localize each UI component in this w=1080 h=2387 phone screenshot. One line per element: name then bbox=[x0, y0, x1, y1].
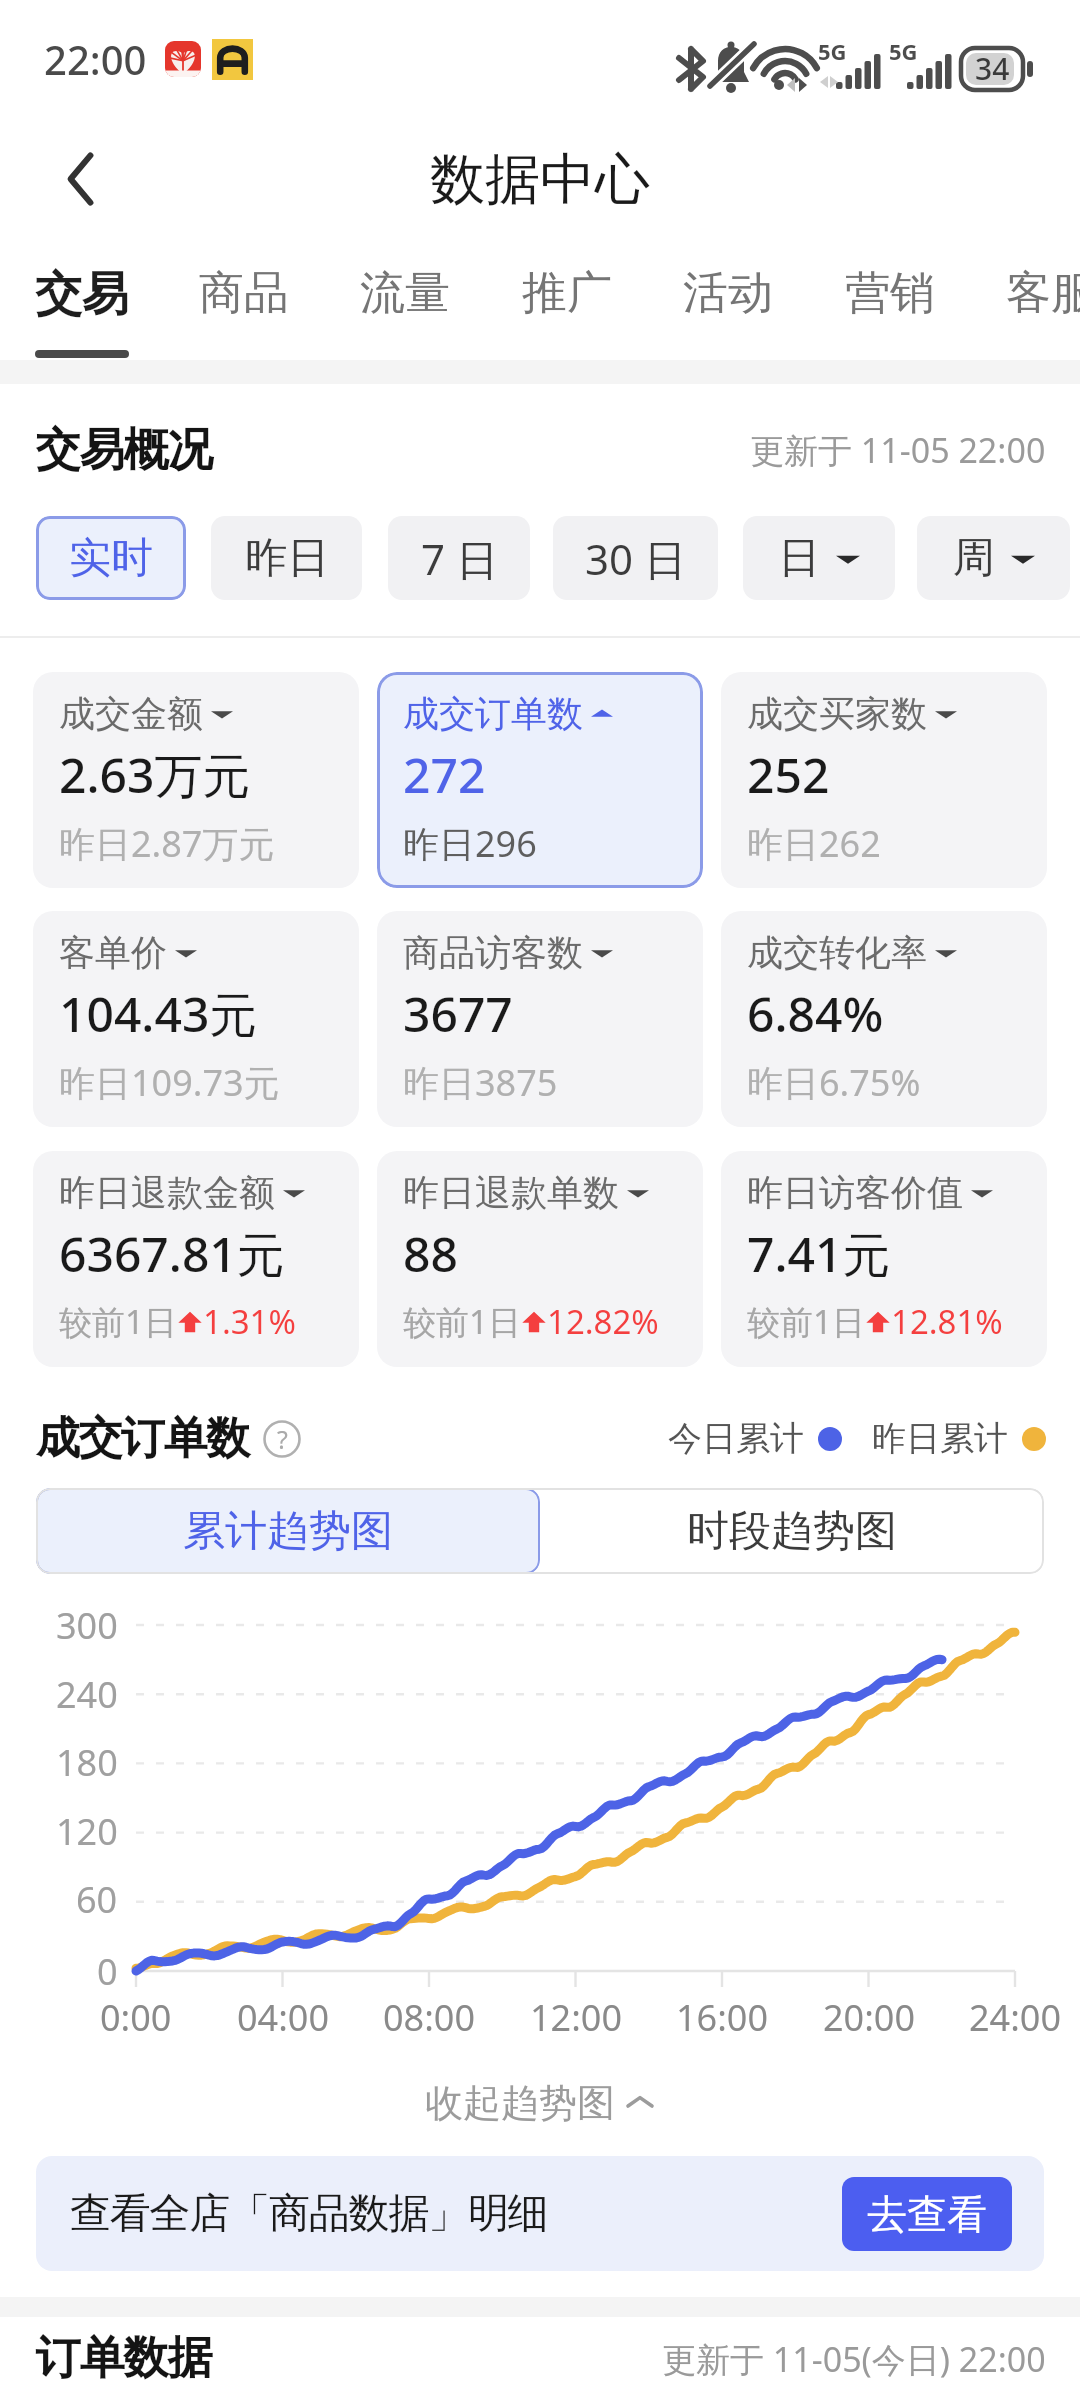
button[interactable]: 成交金额 bbox=[33, 672, 359, 888]
staticText: 300 bbox=[56, 1601, 118, 1649]
button[interactable]: 周 bbox=[917, 516, 1070, 600]
button[interactable]: 成交转化率 bbox=[721, 911, 1047, 1127]
staticText: 120 bbox=[56, 1807, 118, 1855]
button[interactable]: 去查看 bbox=[842, 2177, 1012, 2251]
staticText: 240 bbox=[56, 1670, 118, 1718]
staticText: 去查看 bbox=[867, 2189, 987, 2239]
staticText: 6367.81元 bbox=[59, 1221, 285, 1287]
staticText: 流量 bbox=[360, 265, 450, 322]
staticText: 1.31% bbox=[203, 1299, 296, 1344]
staticText: 6.84% bbox=[747, 981, 884, 1046]
staticText: 昨日109.73元 bbox=[59, 1058, 280, 1107]
staticText: 昨日2.87万元 bbox=[59, 819, 275, 868]
staticText: 12.82% bbox=[547, 1299, 659, 1344]
staticText: 12:00 bbox=[530, 1993, 623, 2042]
staticText: 12.81% bbox=[891, 1299, 1003, 1344]
staticText: 昨日3875 bbox=[403, 1058, 558, 1107]
button[interactable]: 商品 bbox=[164, 240, 324, 358]
button[interactable]: 交易 bbox=[2, 240, 162, 358]
button[interactable]: 营销 bbox=[810, 240, 970, 358]
staticText: 成交订单数 bbox=[403, 691, 583, 736]
staticText: 昨日退款金额 bbox=[59, 1170, 275, 1215]
button[interactable]: 昨日退款金额 bbox=[33, 1151, 359, 1367]
staticText: 订单数据 bbox=[36, 2330, 212, 2387]
staticText: 数据中心 bbox=[430, 145, 650, 214]
staticText: ? bbox=[277, 1422, 288, 1456]
button[interactable]: 30 日 bbox=[553, 516, 718, 600]
staticText: 7 日 bbox=[421, 530, 498, 587]
button[interactable]: 收起趋势图 bbox=[0, 2058, 1080, 2148]
button[interactable]: 客单价 bbox=[33, 911, 359, 1127]
staticText: 交易 bbox=[35, 265, 129, 324]
staticText: 商品访客数 bbox=[403, 930, 583, 975]
staticText: 今日累计 bbox=[668, 1417, 804, 1460]
staticText: 34 bbox=[975, 48, 1010, 89]
staticText: 昨日访客价值 bbox=[747, 1170, 963, 1215]
staticText: 成交金额 bbox=[59, 691, 203, 736]
button[interactable]: 实时 bbox=[36, 516, 186, 600]
staticText: 客服 bbox=[1006, 265, 1080, 322]
staticText: 收起趋势图 bbox=[425, 2079, 615, 2127]
staticText: 活动 bbox=[683, 265, 773, 322]
button[interactable]: 成交买家数 bbox=[721, 672, 1047, 888]
staticText: 日 bbox=[778, 532, 820, 585]
staticText: 16:00 bbox=[676, 1993, 769, 2042]
button[interactable]: 商品访客数 bbox=[377, 911, 703, 1127]
button[interactable]: 客服 bbox=[971, 240, 1080, 358]
staticText: 商品 bbox=[199, 265, 289, 322]
staticText: 查看全店「商品数据」明细 bbox=[70, 2188, 548, 2240]
staticText: 24:00 bbox=[969, 1993, 1062, 2042]
staticText: 104.43元 bbox=[59, 981, 258, 1047]
button[interactable]: 推广 bbox=[487, 240, 647, 358]
staticText: 交易概况 bbox=[36, 422, 212, 479]
staticText: 60 bbox=[76, 1875, 118, 1923]
staticText: 272 bbox=[403, 742, 486, 807]
button[interactable]: 活动 bbox=[648, 240, 808, 358]
staticText: 成交买家数 bbox=[747, 691, 927, 736]
staticText: 20:00 bbox=[823, 1993, 916, 2042]
staticText: 2.63万元 bbox=[59, 742, 251, 808]
staticText: 30 日 bbox=[585, 530, 686, 587]
button[interactable]: 成交订单数 bbox=[377, 672, 703, 888]
button[interactable]: 累计趋势图 bbox=[36, 1488, 540, 1574]
staticText: 营销 bbox=[845, 265, 935, 322]
staticText: 更新于 11-05 22:00 bbox=[750, 427, 1046, 473]
staticText: 昨日累计 bbox=[872, 1417, 1008, 1460]
staticText: 累计趋势图 bbox=[183, 1505, 393, 1558]
staticText: 较前1日 bbox=[59, 1299, 177, 1344]
staticText: 客单价 bbox=[59, 930, 167, 975]
staticText: 昨日退款单数 bbox=[403, 1170, 619, 1215]
button[interactable]: 昨日 bbox=[211, 516, 362, 600]
staticText: 252 bbox=[747, 742, 830, 807]
button[interactable]: 查看全店「商品数据」明细 bbox=[36, 2156, 1044, 2271]
button[interactable]: 时段趋势图 bbox=[540, 1488, 1044, 1574]
staticText: 22:00 bbox=[44, 32, 147, 86]
staticText: 成交转化率 bbox=[747, 930, 927, 975]
staticText: 88 bbox=[403, 1221, 458, 1286]
button[interactable]: Back bbox=[36, 132, 130, 226]
staticText: 实时 bbox=[69, 532, 153, 585]
staticText: 5G bbox=[818, 36, 847, 66]
staticText: 时段趋势图 bbox=[687, 1505, 897, 1558]
button[interactable]: 7 日 bbox=[388, 516, 530, 600]
button[interactable]: 昨日访客价值 bbox=[721, 1151, 1047, 1367]
staticText: 周 bbox=[953, 532, 995, 585]
staticText: 04:00 bbox=[237, 1993, 330, 2042]
staticText: 较前1日 bbox=[403, 1299, 521, 1344]
button[interactable]: 流量 bbox=[325, 240, 485, 358]
staticText: 3677 bbox=[403, 981, 513, 1046]
staticText: 5G bbox=[889, 36, 918, 66]
staticText: 昨日296 bbox=[403, 819, 537, 868]
button[interactable]: 昨日退款单数 bbox=[377, 1151, 703, 1367]
staticText: 昨日262 bbox=[747, 819, 881, 868]
staticText: 昨日 bbox=[245, 532, 329, 585]
staticText: 推广 bbox=[522, 265, 612, 322]
staticText: 0:00 bbox=[100, 1993, 172, 2042]
staticText: 成交订单数 bbox=[36, 1411, 249, 1466]
staticText: 08:00 bbox=[383, 1993, 476, 2042]
staticText: 180 bbox=[56, 1738, 118, 1786]
staticText: 昨日6.75% bbox=[747, 1058, 921, 1107]
button[interactable]: Help bbox=[263, 1420, 301, 1458]
button[interactable]: 日 bbox=[743, 516, 895, 600]
staticText: 7.41元 bbox=[747, 1221, 891, 1287]
